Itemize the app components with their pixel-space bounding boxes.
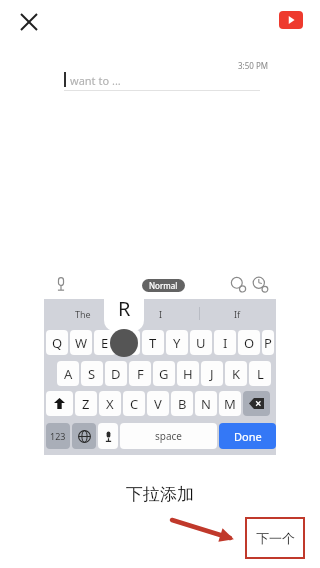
staticText: X — [106, 395, 114, 413]
button[interactable]: I — [122, 299, 199, 328]
button[interactable]: E — [94, 330, 116, 355]
staticText: 下一个 — [256, 530, 295, 546]
staticText: O — [244, 334, 255, 352]
button[interactable]: A — [57, 361, 79, 386]
staticText: D — [111, 365, 121, 383]
staticText: T — [149, 334, 157, 352]
button[interactable] — [72, 423, 96, 449]
button[interactable]: W — [70, 330, 92, 355]
button[interactable]: Q — [46, 330, 68, 355]
button[interactable]: V — [147, 391, 169, 416]
staticText: 123 — [50, 430, 66, 442]
button[interactable]: H — [177, 361, 199, 386]
staticText: S — [88, 365, 96, 383]
staticText: space — [155, 429, 182, 443]
button[interactable]: U — [190, 330, 212, 355]
staticText: A — [64, 365, 73, 383]
staticText: 3:50 PM — [238, 60, 269, 71]
staticText: H — [183, 365, 193, 383]
staticText: G — [159, 365, 169, 383]
staticText: 下拉添加 — [126, 484, 194, 505]
staticText: Q — [52, 334, 63, 352]
button[interactable]: 123 — [46, 423, 70, 449]
button[interactable]: If — [199, 299, 276, 328]
staticText: I — [159, 308, 163, 320]
button[interactable]: M — [219, 391, 241, 416]
button[interactable]: B — [171, 391, 193, 416]
button[interactable]: K — [225, 361, 247, 386]
staticText: U — [196, 334, 206, 352]
button[interactable] — [98, 423, 118, 449]
staticText: P — [264, 334, 272, 352]
button[interactable]: Recent — [252, 276, 269, 293]
button[interactable]: Close — [16, 9, 42, 35]
button[interactable]: I — [214, 330, 236, 355]
staticText: If — [234, 308, 241, 320]
button[interactable]: Done — [219, 423, 276, 449]
button[interactable] — [243, 391, 270, 416]
button[interactable]: F — [129, 361, 151, 386]
staticText: want to ... — [70, 73, 121, 88]
button[interactable]: T — [142, 330, 164, 355]
button[interactable]: 下一个 — [247, 519, 303, 557]
button[interactable]: J — [201, 361, 223, 386]
button[interactable]: D — [105, 361, 127, 386]
staticText: W — [75, 334, 88, 352]
button[interactable]: P — [262, 330, 274, 355]
staticText: Z — [82, 395, 90, 413]
staticText: V — [154, 395, 162, 413]
staticText: I — [223, 334, 228, 352]
button[interactable] — [46, 391, 73, 416]
staticText: K — [232, 365, 241, 383]
button[interactable]: Normal — [149, 280, 178, 291]
button[interactable]: YouTube — [279, 11, 303, 29]
staticText: Y — [173, 334, 181, 352]
staticText: Done — [234, 429, 262, 444]
staticText: L — [257, 365, 264, 383]
button[interactable]: Voice input — [52, 275, 70, 293]
button[interactable]: G — [153, 361, 175, 386]
button[interactable]: The — [44, 299, 122, 328]
staticText: E — [101, 334, 109, 352]
button[interactable]: C — [123, 391, 145, 416]
staticText: M — [224, 395, 236, 413]
staticText: The — [75, 308, 91, 320]
button[interactable]: Y — [166, 330, 188, 355]
staticText: R — [118, 295, 131, 322]
button[interactable]: Z — [75, 391, 97, 416]
staticText: Normal — [149, 280, 178, 291]
button[interactable]: O — [238, 330, 260, 355]
staticText: C — [130, 395, 139, 413]
staticText: B — [178, 395, 187, 413]
button[interactable]: R — [118, 330, 140, 355]
button[interactable]: L — [249, 361, 271, 386]
button[interactable]: Stickers — [230, 276, 247, 293]
button[interactable]: N — [195, 391, 217, 416]
staticText: J — [210, 365, 214, 383]
staticText: N — [201, 395, 211, 413]
button[interactable]: S — [81, 361, 103, 386]
button[interactable]: space — [120, 423, 217, 449]
staticText: F — [137, 365, 144, 383]
button[interactable]: X — [99, 391, 121, 416]
